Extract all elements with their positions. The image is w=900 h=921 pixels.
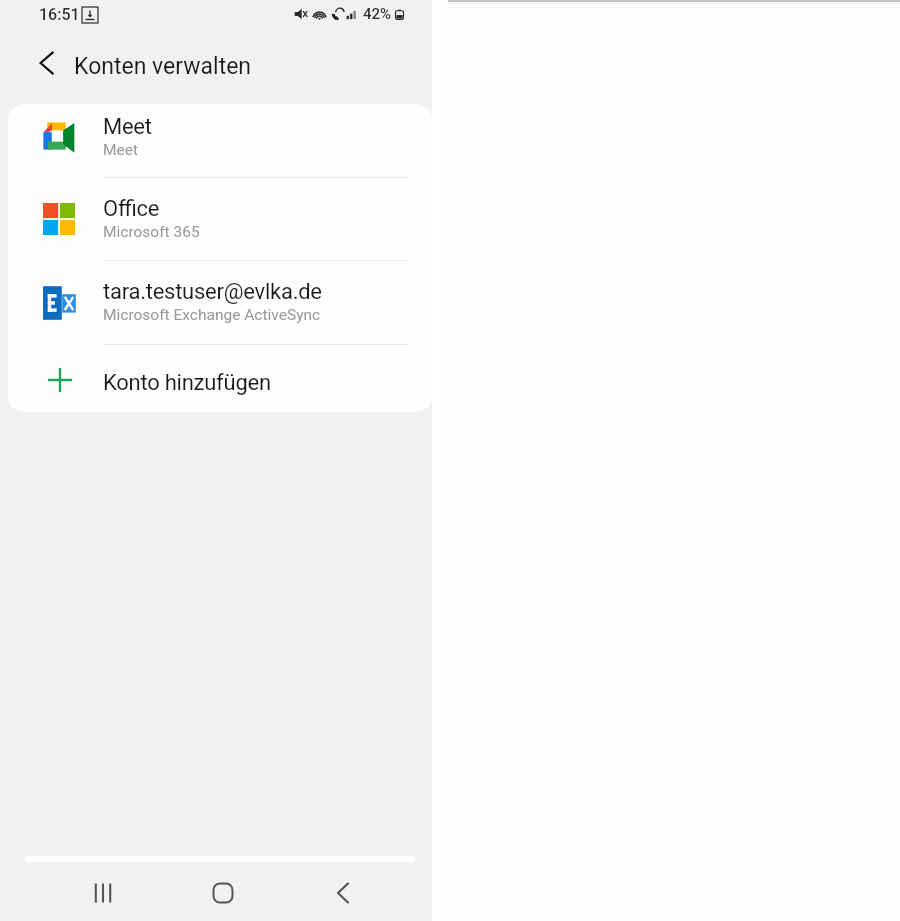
button[interactable]: tara.testuser@evlka.de	[8, 261, 432, 344]
button[interactable]: Letzte Apps	[43, 875, 163, 911]
staticText: 16:51	[39, 5, 80, 24]
staticText: 42%	[363, 5, 392, 23]
button[interactable]: Konto hinzufügen	[8, 345, 432, 412]
staticText: Microsoft 365	[103, 223, 200, 241]
staticText: tara.testuser@evlka.de	[103, 279, 322, 305]
staticText: Meet	[103, 141, 139, 159]
staticText: Konten verwalten	[74, 53, 252, 80]
staticText: Microsoft Exchange ActiveSync	[103, 306, 321, 324]
staticText: Konto hinzufügen	[103, 370, 271, 396]
button[interactable]: Startseite	[163, 875, 283, 911]
button[interactable]: Zurück	[30, 50, 62, 82]
staticText: Office	[103, 196, 160, 222]
staticText: Meet	[103, 114, 152, 140]
button[interactable]: Zurück	[283, 875, 403, 911]
button[interactable]: Meet	[8, 104, 432, 177]
button[interactable]: Office	[8, 178, 432, 260]
